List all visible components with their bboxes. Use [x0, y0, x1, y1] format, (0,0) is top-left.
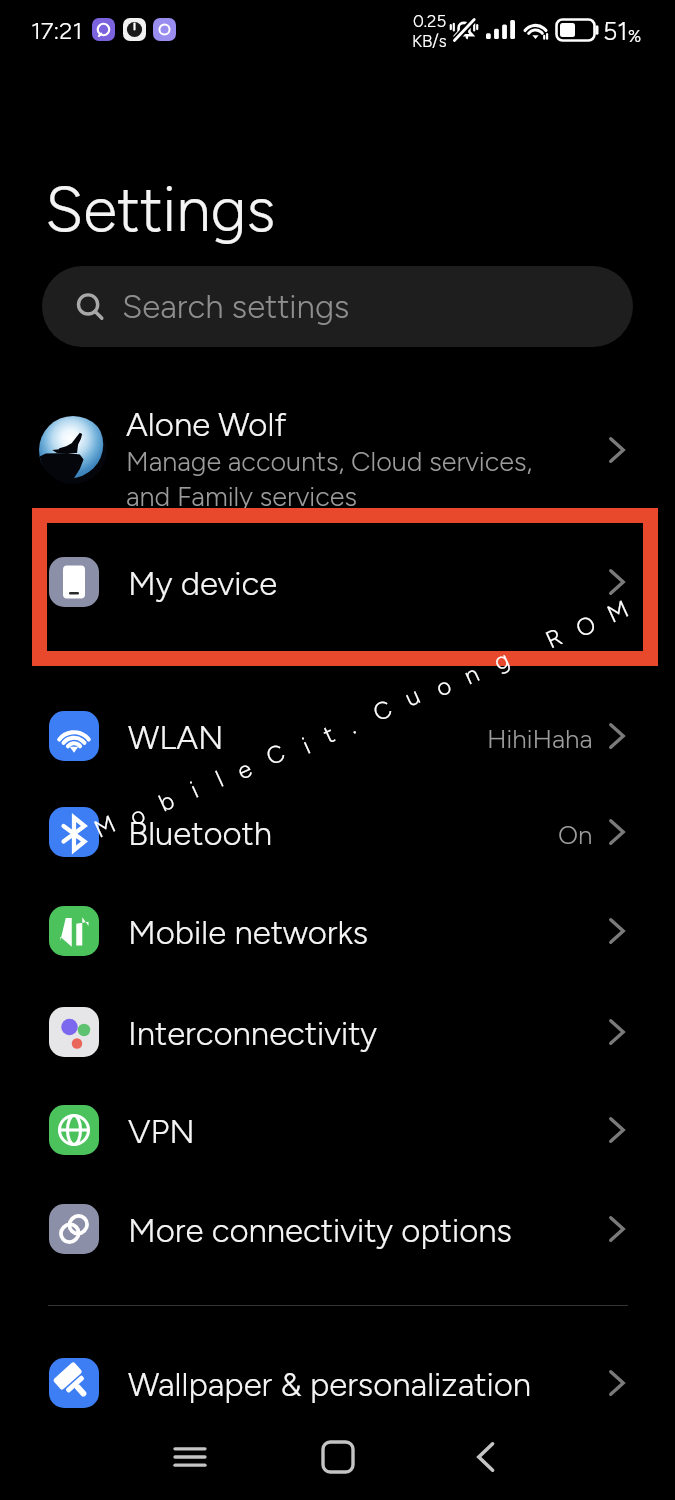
staticText: Settings	[45, 172, 276, 246]
staticText: HihiHaha	[487, 723, 593, 754]
staticText: b	[154, 785, 179, 818]
button[interactable]: Bluetooth	[0, 782, 675, 881]
staticText: On	[558, 819, 593, 850]
button[interactable]: Alone Wolf	[0, 386, 675, 514]
button[interactable]: VPN	[0, 1080, 675, 1179]
staticText: WLAN	[128, 718, 487, 758]
button[interactable]: Recents	[116, 1414, 264, 1500]
staticText: Wallpaper & personalization	[128, 1365, 609, 1405]
staticText: l	[210, 764, 228, 793]
staticText: t	[319, 719, 339, 749]
button[interactable]: Search settings	[42, 266, 633, 347]
button[interactable]: Home	[264, 1414, 412, 1500]
staticText: o	[431, 670, 456, 703]
staticText: VPN	[128, 1112, 609, 1152]
button[interactable]: Wallpaper & personalization	[0, 1333, 675, 1432]
staticText: 0.25	[413, 11, 447, 31]
staticText: KB/s	[412, 31, 447, 51]
button[interactable]: More connectivity options	[0, 1179, 675, 1278]
staticText: Bluetooth	[128, 814, 558, 854]
staticText: C	[368, 693, 396, 727]
staticText: Search settings	[122, 287, 350, 327]
staticText: R	[541, 622, 566, 654]
staticText: .	[343, 711, 360, 739]
staticText: Manage accounts, Cloud services, and Fam…	[126, 445, 533, 513]
button[interactable]: Mobile networks	[0, 881, 675, 980]
staticText: Interconnectivity	[128, 1014, 609, 1054]
button[interactable]: WLAN	[0, 686, 675, 785]
staticText: M	[602, 594, 633, 629]
staticText: O	[571, 609, 600, 643]
staticText: g	[489, 644, 514, 677]
button[interactable]: My device	[0, 532, 675, 631]
staticText: o	[125, 799, 150, 832]
staticText: i	[297, 731, 315, 760]
staticText: 51	[603, 16, 628, 46]
staticText: e	[232, 753, 257, 786]
staticText: %	[628, 26, 642, 46]
button[interactable]: Interconnectivity	[0, 982, 675, 1081]
button[interactable]: Back	[412, 1414, 560, 1500]
staticText: 17:21	[31, 16, 83, 45]
staticText: More connectivity options	[128, 1211, 609, 1251]
staticText: Alone Wolf	[126, 405, 287, 445]
staticText: n	[459, 658, 484, 691]
staticText: i	[185, 775, 203, 804]
staticText: My device	[128, 564, 609, 604]
staticText: u	[400, 680, 425, 713]
staticText: Mobile networks	[128, 913, 609, 953]
staticText: M	[89, 809, 120, 844]
staticText: C	[261, 737, 289, 771]
